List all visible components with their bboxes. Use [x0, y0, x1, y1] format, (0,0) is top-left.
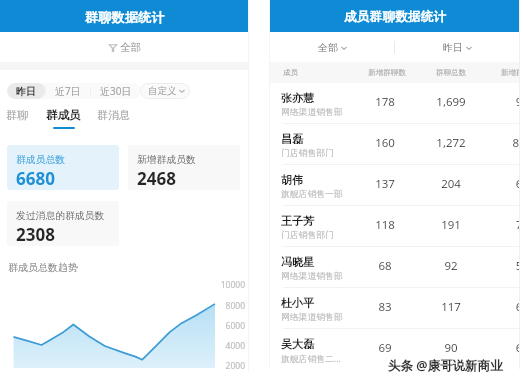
button[interactable]: 近30日: [91, 83, 141, 99]
button[interactable]: 群成员: [46, 108, 81, 129]
staticText: 杜小平: [281, 296, 314, 310]
staticText: 6000: [214, 320, 245, 332]
staticText: 137: [355, 176, 415, 192]
staticText: 张亦慧: [281, 91, 314, 105]
staticText: 2000: [214, 360, 245, 372]
staticText: 191: [421, 217, 481, 233]
staticText: 178: [355, 94, 415, 110]
staticText: 网络渠道销售部: [281, 107, 343, 118]
staticText: 成员群聊数据统计: [344, 9, 447, 25]
button[interactable]: 张亦慧: [270, 83, 520, 124]
staticText: 近7日: [55, 84, 81, 98]
staticText: 门店销售部门: [281, 148, 334, 159]
staticText: 2468: [137, 167, 176, 190]
button[interactable]: 群成员总数: [7, 145, 119, 190]
staticText: 新增群聊数: [357, 68, 417, 77]
staticText: 网络渠道销售部: [281, 312, 343, 323]
staticText: 群成员总数趋势: [8, 261, 78, 274]
staticText: 昨日: [16, 85, 36, 98]
button[interactable]: 吴大磊: [270, 329, 520, 369]
staticText: 83: [355, 299, 415, 315]
button[interactable]: 发过消息的群成员数: [7, 201, 119, 246]
button[interactable]: 群聊: [6, 108, 28, 122]
button[interactable]: 胡伟: [270, 165, 520, 206]
staticText: 117: [421, 299, 481, 315]
button[interactable]: 昌磊: [270, 124, 520, 165]
button[interactable]: 全部: [270, 32, 394, 62]
staticText: 6: [489, 176, 520, 192]
staticText: 90: [421, 340, 481, 356]
staticText: 87: [489, 135, 520, 151]
staticText: 68: [355, 258, 415, 274]
staticText: 7: [489, 217, 520, 233]
staticText: 10000: [214, 279, 245, 291]
staticText: 69: [355, 340, 415, 356]
button[interactable]: 全部: [101, 36, 149, 59]
staticText: 6680: [16, 167, 55, 190]
staticText: 成员: [283, 68, 298, 77]
staticText: 6: [489, 340, 520, 356]
staticText: 118: [355, 217, 415, 233]
button[interactable]: 昨日: [395, 32, 520, 62]
button[interactable]: 昨日: [7, 83, 45, 99]
staticText: 群聊: [6, 108, 28, 122]
staticText: 4000: [214, 340, 245, 352]
button[interactable]: 冯晓星: [270, 247, 520, 288]
staticText: 发过消息的群成员数: [16, 210, 105, 222]
staticText: 6: [489, 299, 520, 315]
staticText: 旗舰店销售二...: [281, 353, 341, 365]
staticText: 昨日: [443, 41, 463, 54]
staticText: 204: [421, 176, 481, 192]
staticText: 新增群成员数: [137, 154, 196, 166]
staticText: 胡伟: [281, 173, 303, 187]
staticText: 1,272: [421, 135, 481, 151]
button[interactable]: 杜小平: [270, 288, 520, 329]
staticText: 昌磊: [281, 132, 303, 146]
staticText: 冯晓星: [281, 255, 314, 269]
staticText: 群聊数据统计: [85, 9, 165, 25]
staticText: 群聊总数: [421, 68, 481, 77]
staticText: 新增群聊数: [501, 68, 520, 77]
staticText: 自定义: [148, 85, 177, 97]
staticText: 吴大磊: [281, 337, 314, 351]
staticText: 5: [489, 258, 520, 274]
staticText: 门店销售部门: [281, 230, 334, 241]
staticText: 群成员: [46, 108, 81, 122]
staticText: 头条 @康哥说新商业: [388, 357, 503, 374]
staticText: 群成员总数: [16, 154, 65, 166]
button[interactable]: 群消息: [97, 108, 130, 122]
staticText: 1,699: [421, 94, 481, 110]
staticText: 王子芳: [281, 214, 314, 228]
staticText: 160: [355, 135, 415, 151]
staticText: 近30日: [100, 84, 132, 98]
staticText: 92: [421, 258, 481, 274]
staticText: 2308: [16, 223, 55, 246]
staticText: 全部: [120, 41, 141, 54]
button[interactable]: 近7日: [46, 83, 90, 99]
button[interactable]: 自定义: [140, 83, 190, 99]
button[interactable]: 新增群成员数: [128, 145, 240, 190]
staticText: 旗舰店销售一部: [281, 189, 343, 200]
staticText: 9: [489, 94, 520, 110]
button[interactable]: 王子芳: [270, 206, 520, 247]
staticText: 8000: [214, 300, 245, 312]
staticText: 全部: [318, 41, 338, 54]
staticText: 群消息: [97, 108, 130, 122]
staticText: 网络渠道销售部: [281, 271, 343, 282]
